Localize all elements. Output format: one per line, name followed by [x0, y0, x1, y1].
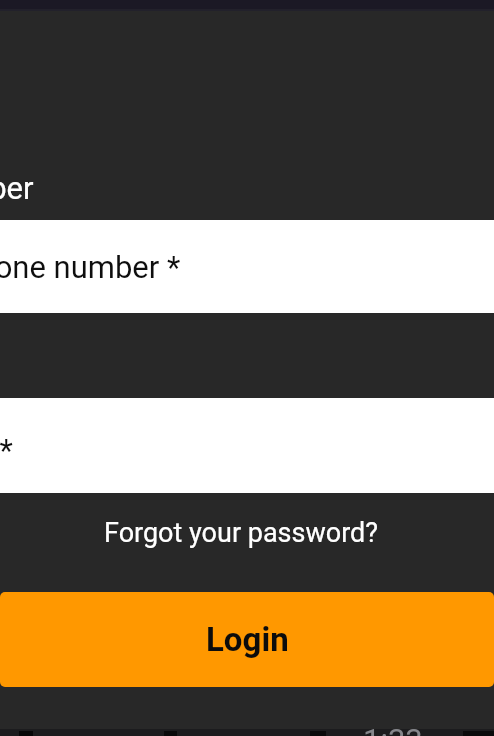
- button[interactable]: Phone number *: [0, 220, 494, 313]
- staticText: Phone number *: [0, 249, 181, 285]
- button[interactable]: Forgot your password?: [0, 505, 488, 561]
- button[interactable]: Login: [0, 592, 494, 687]
- staticText: Password *: [0, 432, 13, 468]
- staticText: Forgot your password?: [104, 517, 379, 549]
- staticText: 1:33: [363, 722, 423, 736]
- staticText: mber: [0, 170, 34, 206]
- button[interactable]: Password *: [0, 398, 494, 493]
- staticText: Login: [206, 620, 289, 659]
